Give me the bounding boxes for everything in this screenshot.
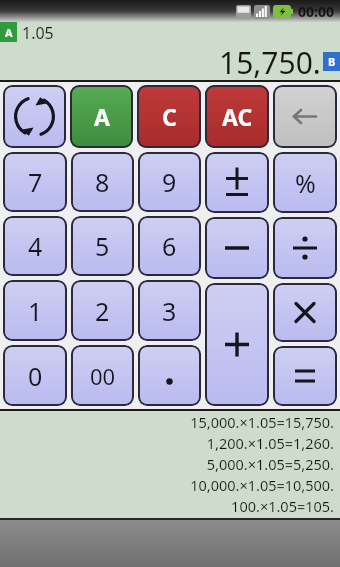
staticText: 15,000.×1.05=15,750. [190, 412, 334, 432]
staticText: % [295, 166, 316, 200]
staticText: 0 [28, 359, 43, 393]
staticText: 5 [95, 229, 110, 263]
staticText: 5,000.×1.05=5,250. [206, 454, 334, 474]
button[interactable]: 3 [138, 280, 201, 341]
button[interactable]: Plus minus sign [205, 152, 269, 213]
button[interactable]: AC [205, 85, 269, 148]
button[interactable]: % [273, 152, 337, 213]
staticText: 100.×1.05=105. [231, 496, 334, 516]
staticText: 6 [162, 229, 177, 263]
staticText: 4 [28, 229, 43, 263]
button[interactable]: 4 [3, 216, 67, 276]
button[interactable]: Plus [205, 283, 269, 406]
staticText: 1 [28, 294, 43, 328]
staticText: AC [222, 101, 253, 132]
button[interactable]: Backspace [273, 85, 337, 148]
button[interactable]: 0 [3, 345, 67, 406]
button[interactable]: 1 [3, 280, 67, 341]
button[interactable]: 7 [3, 152, 67, 212]
staticText: 2 [95, 294, 110, 328]
button[interactable]: Swap A and B [3, 85, 66, 148]
staticText: C [162, 101, 177, 132]
button[interactable]: Equals [273, 346, 337, 406]
staticText: B [328, 54, 336, 69]
staticText: 1,200.×1.05=1,260. [206, 433, 334, 453]
button[interactable]: 2 [71, 280, 134, 341]
staticText: 1.05 [22, 22, 54, 42]
button[interactable]: 6 [138, 216, 201, 276]
button[interactable]: Multiply [273, 283, 337, 342]
staticText: 7 [28, 165, 43, 199]
button[interactable]: 8 [71, 152, 134, 212]
button[interactable]: Divide [273, 217, 337, 279]
staticText: 10,000.×1.05=10,500. [190, 475, 334, 495]
staticText: 15,750. [219, 42, 321, 80]
staticText: A [5, 25, 13, 40]
button[interactable]: 00 [71, 345, 134, 406]
staticText: 00:00 [298, 2, 334, 21]
button[interactable]: Decimal point [138, 345, 201, 406]
button[interactable]: 5 [71, 216, 134, 276]
staticText: 8 [95, 165, 110, 199]
button[interactable]: Minus [205, 217, 269, 279]
staticText: 3 [162, 294, 177, 328]
staticText: 9 [162, 165, 177, 199]
button[interactable]: 9 [138, 152, 201, 212]
button[interactable]: A [70, 85, 133, 148]
staticText: A [94, 101, 110, 132]
button[interactable]: C [137, 85, 201, 148]
staticText: 00 [90, 361, 116, 391]
